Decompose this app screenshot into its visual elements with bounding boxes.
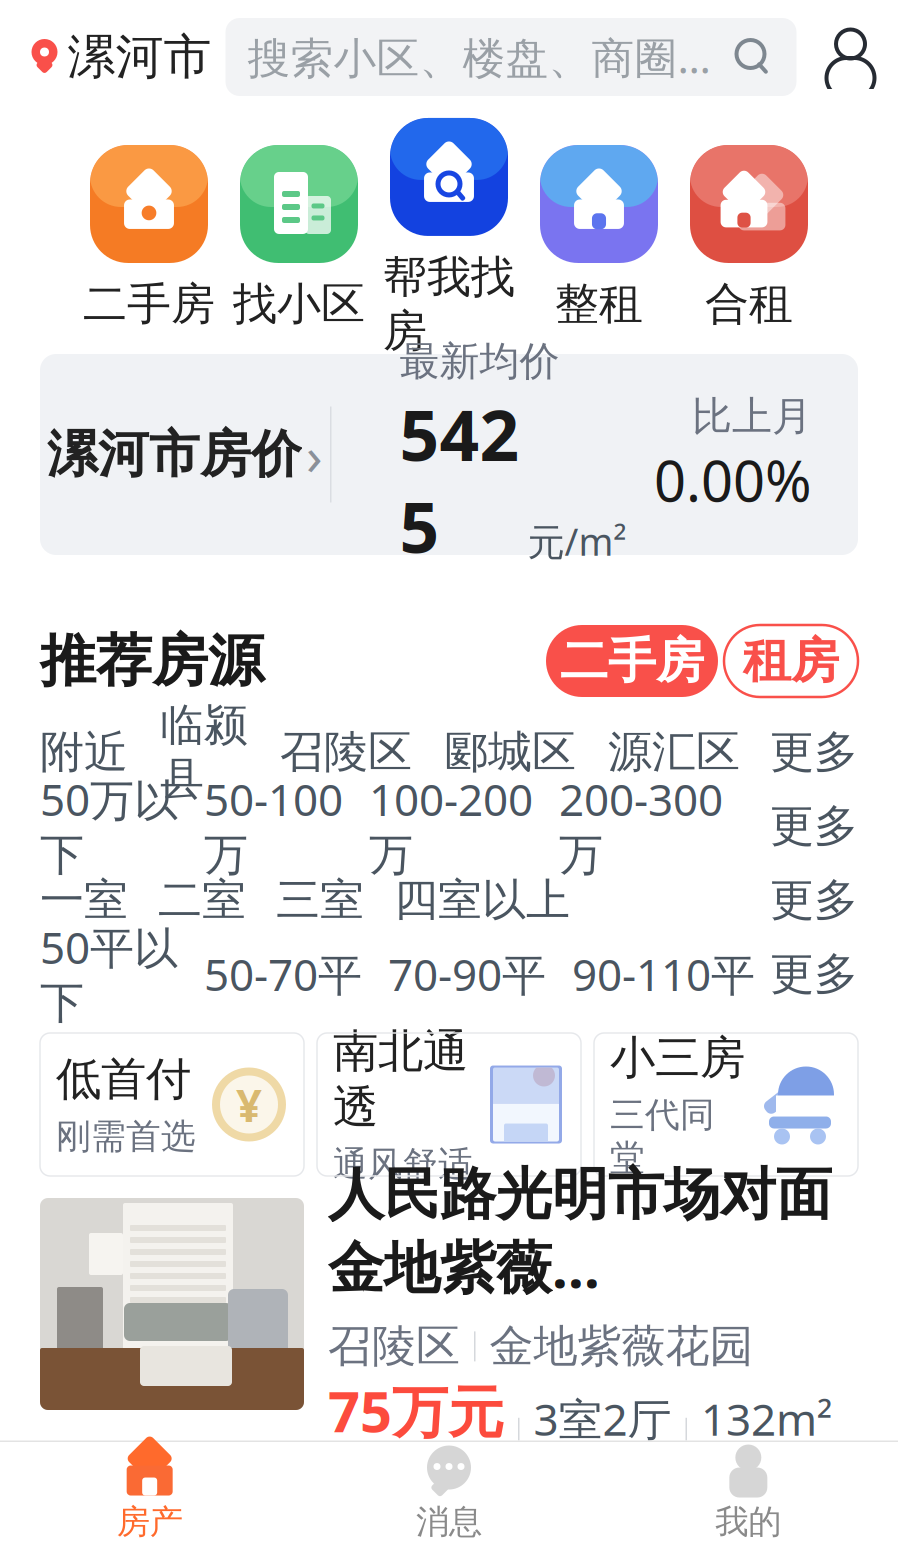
staticText: 附近 bbox=[40, 725, 128, 779]
staticText: 0.00% bbox=[654, 443, 812, 517]
staticText: 找小区 bbox=[233, 277, 365, 331]
button[interactable]: 消息 bbox=[299, 1443, 599, 1543]
button[interactable]: 更多 bbox=[770, 799, 858, 853]
button[interactable]: 个人中心 bbox=[818, 25, 882, 89]
staticText: 50万以下 bbox=[40, 770, 178, 882]
staticText: 比上月 bbox=[692, 392, 812, 441]
staticText: 漯河市房价 bbox=[47, 423, 302, 486]
staticText: 帮我找房 bbox=[383, 250, 515, 358]
button[interactable]: 临颍县 bbox=[160, 698, 248, 806]
button[interactable]: 源汇区 bbox=[608, 725, 740, 779]
button[interactable]: 召陵区 bbox=[280, 725, 412, 779]
staticText: 100-200万 bbox=[369, 770, 533, 882]
staticText: 75万元 bbox=[328, 1373, 504, 1448]
staticText: 更多 bbox=[770, 725, 858, 779]
staticText: 更多 bbox=[770, 799, 858, 853]
button[interactable]: 搜索小区、楼盘、商圈... bbox=[225, 18, 796, 96]
button[interactable]: 小三房 bbox=[594, 1033, 858, 1176]
button[interactable]: 二室 bbox=[158, 873, 246, 927]
staticText: 50-70平 bbox=[204, 945, 362, 1003]
staticText: 200-300万 bbox=[559, 770, 723, 882]
button[interactable]: 租房 bbox=[724, 625, 858, 697]
button[interactable]: 200-300万 bbox=[559, 770, 723, 882]
staticText: 三室 bbox=[276, 873, 364, 927]
staticText: 郾城区 bbox=[444, 725, 576, 779]
button[interactable]: 漯河市房价 bbox=[40, 419, 330, 490]
button[interactable]: 人民路光明市场对面金地紫薇... bbox=[40, 1198, 858, 1410]
staticText: 最新均价 bbox=[399, 337, 559, 386]
button[interactable]: 找小区 bbox=[224, 145, 374, 331]
button[interactable]: 四室以上 bbox=[394, 873, 570, 927]
staticText: 二手房 bbox=[560, 631, 704, 690]
staticText: 消息 bbox=[416, 1501, 482, 1542]
staticText: ¥ bbox=[236, 1074, 262, 1135]
staticText: 临颍县 bbox=[160, 698, 248, 806]
button[interactable]: 一室 bbox=[40, 873, 128, 927]
button[interactable]: 合租 bbox=[674, 145, 824, 331]
button[interactable]: 整租 bbox=[524, 145, 674, 331]
staticText: 通风舒适 bbox=[333, 1143, 473, 1185]
button[interactable]: 附近 bbox=[40, 725, 128, 779]
staticText: 整租 bbox=[555, 277, 643, 331]
staticText: 金地紫薇花园 bbox=[489, 1319, 753, 1373]
staticText: 搜索小区、楼盘、商圈... bbox=[247, 29, 710, 85]
button[interactable]: 二手房 bbox=[74, 145, 224, 331]
button[interactable]: 郾城区 bbox=[444, 725, 576, 779]
button[interactable]: 更多 bbox=[770, 873, 858, 927]
button[interactable]: 50-70平 bbox=[204, 945, 362, 1003]
staticText: 更多 bbox=[770, 947, 858, 1001]
staticText: 四室以上 bbox=[394, 873, 570, 927]
staticText: 50-100万 bbox=[204, 770, 343, 882]
button[interactable]: 帮我找房 bbox=[374, 118, 524, 358]
staticText: 132m² bbox=[701, 1389, 832, 1448]
staticText: 漯河市 bbox=[67, 27, 211, 86]
button[interactable]: 70-90平 bbox=[388, 945, 546, 1003]
staticText: 小三房 bbox=[610, 1030, 745, 1086]
staticText: 召陵区 bbox=[280, 725, 412, 779]
button[interactable]: 更多 bbox=[770, 947, 858, 1001]
staticText: 召陵区 bbox=[328, 1319, 460, 1373]
staticText: 90-110平 bbox=[572, 945, 755, 1003]
staticText: 我的 bbox=[715, 1501, 781, 1542]
staticText: 3室2厅 bbox=[533, 1389, 671, 1448]
staticText: 南北通透 bbox=[333, 1023, 468, 1135]
staticText: 低首付 bbox=[56, 1051, 191, 1107]
button[interactable]: 我的 bbox=[599, 1443, 898, 1543]
button[interactable]: 100-200万 bbox=[369, 770, 533, 882]
staticText: 二手房 bbox=[83, 277, 215, 331]
button[interactable]: 90-110平 bbox=[572, 945, 755, 1003]
staticText: 5425 bbox=[399, 388, 519, 572]
staticText: 三代同堂 bbox=[610, 1094, 715, 1179]
button[interactable]: 50-100万 bbox=[204, 770, 343, 882]
staticText: 70-90平 bbox=[388, 945, 546, 1003]
staticText: 更多 bbox=[770, 873, 858, 927]
button[interactable]: 南北通透 bbox=[317, 1033, 581, 1176]
staticText: 房产 bbox=[117, 1501, 183, 1542]
button[interactable]: 低首付 bbox=[40, 1033, 304, 1176]
staticText: 刚需首选 bbox=[56, 1115, 196, 1158]
staticText: › bbox=[306, 419, 323, 490]
staticText: 元/m² bbox=[527, 517, 626, 566]
button[interactable]: 漯河市 bbox=[0, 27, 211, 86]
button[interactable]: 房产 bbox=[0, 1443, 299, 1543]
staticText: 推荐房源 bbox=[40, 627, 264, 695]
staticText: 源汇区 bbox=[608, 725, 740, 779]
button[interactable]: 二手房 bbox=[546, 625, 718, 697]
staticText: 一室 bbox=[40, 873, 128, 927]
button[interactable]: 50平以下 bbox=[40, 918, 178, 1030]
button[interactable]: 更多 bbox=[770, 725, 858, 779]
staticText: 人民路光明市场对面金地紫薇... bbox=[328, 1160, 832, 1303]
button[interactable]: 50万以下 bbox=[40, 770, 178, 882]
staticText: 50平以下 bbox=[40, 918, 178, 1030]
staticText: 二室 bbox=[158, 873, 246, 927]
staticText: 租房 bbox=[743, 631, 839, 690]
button[interactable]: 三室 bbox=[276, 873, 364, 927]
staticText: 合租 bbox=[705, 277, 793, 331]
